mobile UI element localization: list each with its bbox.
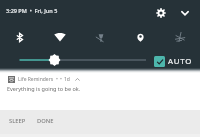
staticText: 1d: [64, 76, 70, 83]
button[interactable]: Collapse notification: [73, 75, 81, 83]
button[interactable]: Settings: [153, 5, 169, 21]
staticText: AUTO: [168, 56, 193, 67]
staticText: Everything is going to be ok.: [7, 85, 81, 92]
staticText: SLEEP: [9, 117, 26, 125]
staticText: 3:29 PM • Fri, Jun 5: [6, 7, 58, 14]
button[interactable]: Airplane mode off: [160, 26, 200, 48]
button[interactable]: SLEEP: [4, 112, 31, 130]
staticText: •: [56, 76, 58, 83]
button[interactable]: Brightness: [14, 53, 154, 67]
staticText: •: [60, 76, 62, 83]
button[interactable]: Wi-Fi: [40, 26, 80, 48]
button[interactable]: DONE: [32, 112, 59, 130]
button[interactable]: Cast off: [80, 26, 120, 48]
staticText: DONE: [37, 117, 54, 125]
button[interactable]: Bluetooth: [0, 26, 40, 48]
button[interactable]: AUTO: [152, 53, 193, 69]
button[interactable]: Collapse panel: [177, 5, 193, 21]
button[interactable]: Location: [120, 26, 160, 48]
staticText: Life Reminders: [18, 76, 54, 83]
